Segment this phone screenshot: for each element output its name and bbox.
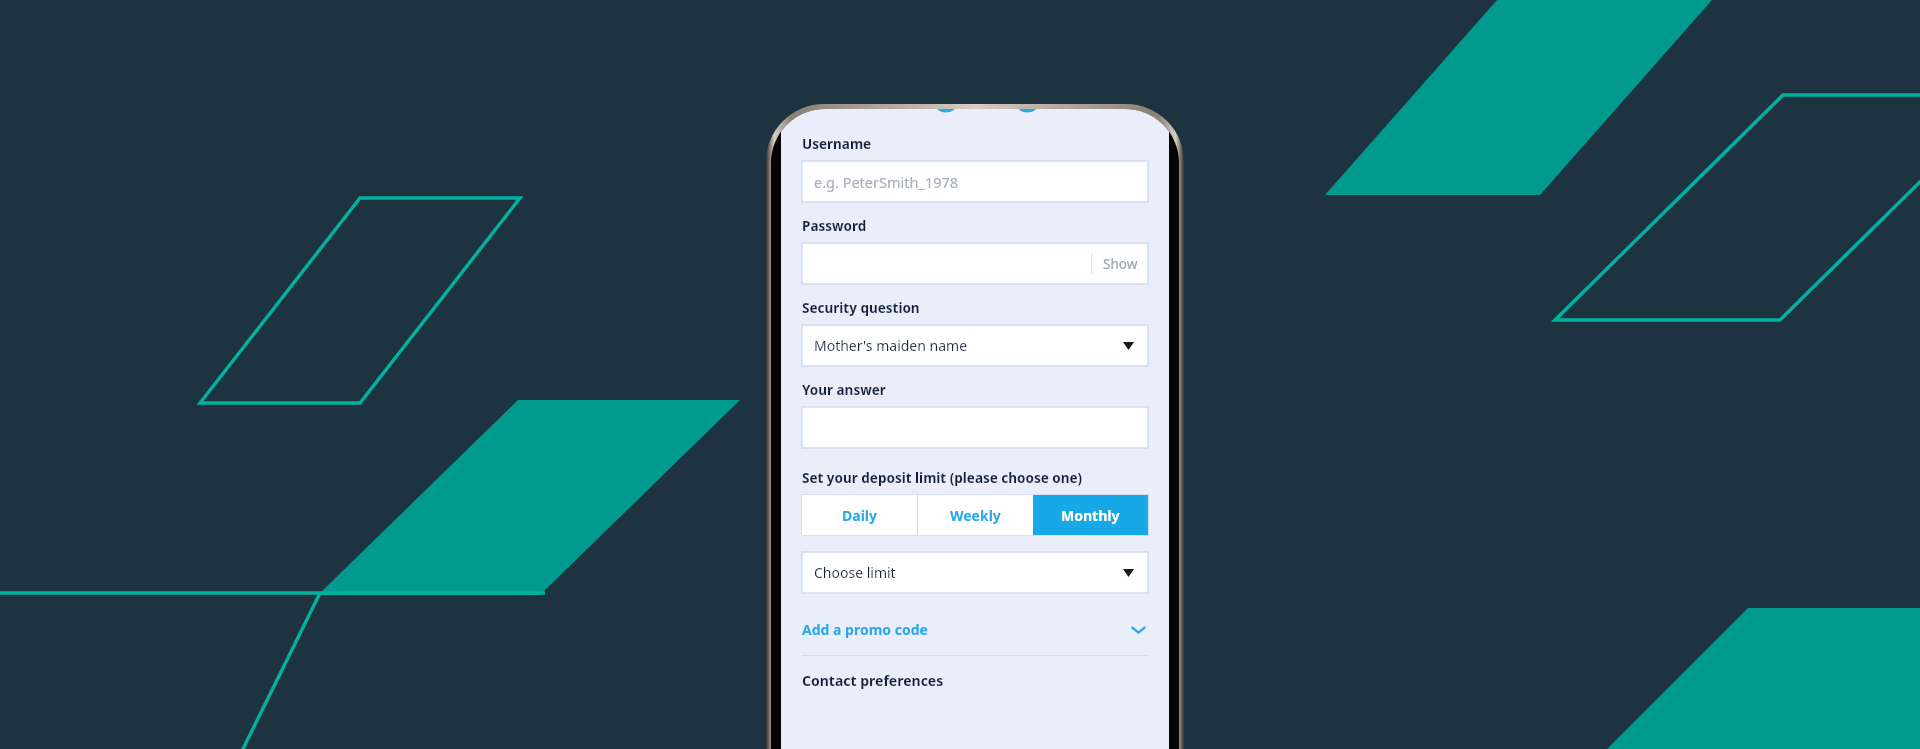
button[interactable]: Weekly: [918, 495, 1033, 535]
button[interactable]: Show: [1092, 243, 1148, 284]
button[interactable]: Daily: [802, 495, 917, 535]
staticText: Password: [802, 217, 867, 235]
staticText: Your answer: [802, 381, 886, 399]
button[interactable]: Choose limit: [802, 552, 1148, 593]
staticText: Choose limit: [814, 563, 896, 582]
staticText: Mother's maiden name: [814, 336, 968, 355]
button[interactable]: e.g. PeterSmith_1978: [802, 161, 1148, 202]
button[interactable]: [802, 407, 1148, 448]
staticText: Show: [1103, 255, 1138, 273]
staticText: Contact preferences: [802, 671, 944, 690]
button[interactable]: Monthly: [1033, 495, 1148, 535]
staticText: Add a promo code: [802, 620, 928, 639]
button[interactable]: Mother's maiden name: [802, 325, 1148, 366]
staticText: Weekly: [950, 506, 1001, 525]
staticText: e.g. PeterSmith_1978: [814, 172, 959, 192]
staticText: Monthly: [1061, 506, 1120, 525]
staticText: Set your deposit limit (please choose on…: [802, 469, 1083, 487]
other: Expand promo code: [1129, 620, 1148, 639]
button[interactable]: Add a promo code: [802, 615, 1148, 643]
staticText: Daily: [842, 506, 877, 525]
staticText: Security question: [802, 299, 920, 317]
button[interactable]: Show: [802, 243, 1148, 284]
staticText: Username: [802, 135, 872, 153]
